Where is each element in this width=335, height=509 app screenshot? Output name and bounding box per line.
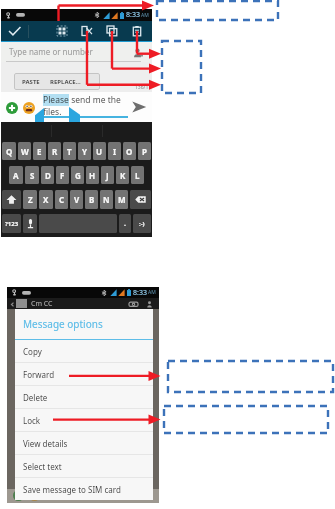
button[interactable]: Send bbox=[129, 97, 149, 117]
staticText: Z bbox=[28, 194, 33, 205]
staticText: K bbox=[120, 170, 126, 181]
staticText: Save message to SIM card bbox=[23, 484, 121, 495]
button[interactable]: Select text bbox=[15, 455, 153, 477]
button[interactable]: . bbox=[119, 214, 131, 233]
button[interactable]: Select all bbox=[49, 21, 74, 41]
button[interactable] bbox=[130, 190, 151, 209]
button[interactable]: ?123 bbox=[2, 214, 21, 233]
button[interactable]: B bbox=[85, 190, 98, 209]
button[interactable]: H bbox=[86, 166, 99, 184]
staticText: 136/1 bbox=[135, 84, 149, 91]
button[interactable]: Z bbox=[23, 190, 37, 209]
button[interactable]: Y bbox=[78, 142, 91, 160]
button[interactable]: N bbox=[100, 190, 113, 209]
staticText: G bbox=[75, 170, 81, 181]
staticText: Select text bbox=[23, 461, 62, 472]
staticText: Copy bbox=[23, 346, 42, 357]
button[interactable]: Forward bbox=[15, 363, 153, 385]
button[interactable]: Choose contact bbox=[131, 46, 144, 59]
staticText: A bbox=[13, 170, 19, 181]
button[interactable]: G bbox=[71, 166, 84, 184]
staticText: C bbox=[59, 194, 65, 205]
button[interactable]: PASTE bbox=[14, 73, 46, 90]
staticText: D bbox=[45, 170, 51, 181]
staticText: J bbox=[106, 170, 109, 181]
staticText: AM bbox=[141, 12, 149, 19]
staticText: I bbox=[113, 146, 117, 157]
staticText: R bbox=[52, 146, 58, 157]
staticText: Delete bbox=[23, 392, 48, 403]
button[interactable]: C bbox=[55, 190, 68, 209]
button[interactable]: Camera bbox=[128, 299, 138, 309]
button[interactable]: O bbox=[123, 142, 136, 160]
button[interactable]: :-) bbox=[133, 214, 151, 233]
staticText: O bbox=[126, 146, 133, 157]
button[interactable]: F bbox=[56, 166, 69, 184]
staticText: Q bbox=[6, 146, 13, 157]
staticText: F bbox=[60, 170, 65, 181]
staticText: W bbox=[21, 146, 29, 157]
button[interactable]: T bbox=[63, 142, 76, 160]
button[interactable]: Delete bbox=[15, 386, 153, 408]
staticText: . bbox=[124, 219, 126, 229]
button[interactable]: Copy bbox=[99, 21, 124, 41]
button[interactable]: L bbox=[131, 166, 144, 184]
button[interactable]: D bbox=[41, 166, 54, 184]
button[interactable]: REPLACE... bbox=[46, 73, 85, 90]
button[interactable]: Q bbox=[2, 142, 16, 160]
button[interactable]: Insert smiley bbox=[21, 100, 36, 115]
button[interactable]: X bbox=[39, 190, 53, 209]
staticText: files. bbox=[43, 106, 62, 118]
staticText: B bbox=[89, 194, 95, 205]
staticText: U bbox=[96, 146, 103, 157]
button[interactable]: Lock bbox=[15, 409, 153, 431]
staticText: Y bbox=[82, 146, 88, 157]
button[interactable]: W bbox=[18, 142, 31, 160]
staticText: Lock bbox=[23, 415, 41, 426]
staticText: X bbox=[43, 194, 49, 205]
staticText: M bbox=[118, 194, 126, 205]
button[interactable]: Save message to SIM card bbox=[15, 478, 153, 500]
staticText: V bbox=[74, 194, 80, 205]
button[interactable]: Attach bbox=[4, 100, 19, 115]
button[interactable]: V bbox=[70, 190, 83, 209]
button[interactable]: U bbox=[93, 142, 106, 160]
staticText: Type name or number bbox=[9, 46, 93, 57]
staticText: send me the bbox=[69, 94, 121, 106]
button[interactable]: Done bbox=[1, 21, 28, 41]
staticText: REPLACE... bbox=[50, 78, 81, 86]
button[interactable]: M bbox=[115, 190, 128, 209]
staticText: T bbox=[67, 146, 72, 157]
button[interactable]: K bbox=[116, 166, 129, 184]
staticText: L bbox=[135, 170, 140, 181]
staticText: 8:33 bbox=[126, 10, 140, 20]
staticText: View details bbox=[23, 438, 68, 449]
button[interactable]: Paste bbox=[124, 21, 149, 41]
button[interactable]: E bbox=[33, 142, 46, 160]
staticText: 8:33 bbox=[133, 288, 147, 298]
button[interactable] bbox=[23, 214, 37, 233]
staticText: S bbox=[30, 170, 35, 181]
button[interactable]: A bbox=[9, 166, 23, 184]
button[interactable]: S bbox=[25, 166, 39, 184]
button[interactable]: R bbox=[48, 142, 61, 160]
staticText: :-) bbox=[139, 220, 145, 228]
button[interactable]: P bbox=[138, 142, 151, 160]
staticText: Forward bbox=[23, 369, 55, 380]
staticText: PASTE bbox=[22, 78, 40, 86]
button[interactable]: Contact bbox=[144, 299, 154, 309]
staticText: E bbox=[37, 146, 42, 157]
button[interactable] bbox=[2, 190, 21, 209]
button[interactable]: I bbox=[108, 142, 121, 160]
staticText: P bbox=[142, 146, 147, 157]
button[interactable]: Cut bbox=[74, 21, 99, 41]
staticText: AM bbox=[148, 289, 156, 296]
staticText: ?123 bbox=[5, 220, 19, 228]
button[interactable]: Copy bbox=[15, 340, 153, 362]
button[interactable]: Back bbox=[8, 300, 16, 308]
staticText: Cm CC bbox=[31, 299, 53, 309]
staticText: H bbox=[89, 170, 96, 181]
button[interactable]: View details bbox=[15, 432, 153, 454]
button[interactable]: J bbox=[101, 166, 114, 184]
